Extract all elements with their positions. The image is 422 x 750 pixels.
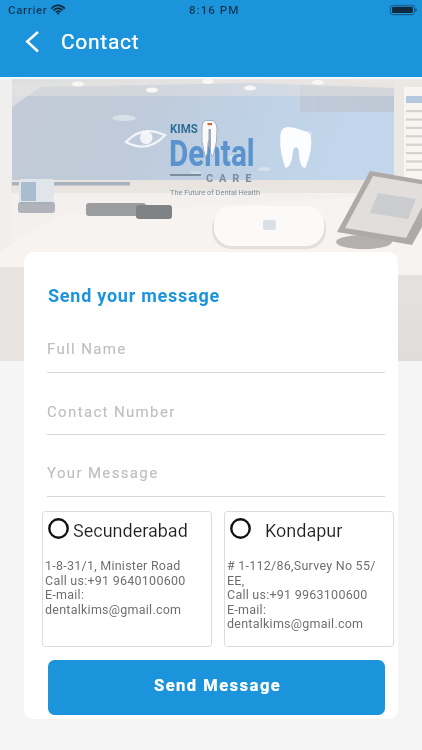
staticText: dentalkims@gmail.com [227, 616, 364, 631]
staticText: E-mail: [45, 587, 85, 602]
staticText: Kondapur [265, 520, 343, 541]
button[interactable] [42, 511, 212, 647]
staticText: Your Message [47, 464, 159, 482]
button[interactable]: Send Message [48, 660, 385, 715]
staticText: Call us:+91 9640100600 [45, 573, 186, 588]
button[interactable] [47, 392, 385, 428]
staticText: E-mail: [227, 602, 267, 617]
staticText: The Future of Dental Health [170, 188, 261, 197]
staticText: Full Name [47, 340, 127, 358]
button[interactable] [47, 453, 385, 489]
staticText: Carrier [8, 3, 48, 17]
staticText: EE, [227, 573, 245, 588]
staticText: Contact Number [47, 403, 176, 421]
staticText: C A R E [206, 172, 253, 185]
staticText: Call us:+91 9963100600 [227, 587, 368, 602]
staticText: Send your message [48, 285, 220, 306]
staticText: # 1-112/86,Survey No 55/ [227, 558, 376, 573]
staticText: Dental [169, 131, 255, 175]
staticText: 1-8-31/1, Minister Road [45, 558, 181, 573]
staticText: Send Message [154, 676, 282, 695]
staticText: Secunderabad [73, 520, 188, 541]
staticText: Contact [61, 30, 140, 55]
button[interactable] [47, 329, 385, 365]
button[interactable] [224, 511, 394, 647]
button[interactable]: Back [18, 26, 50, 56]
staticText: 8:16 PM [189, 3, 240, 17]
staticText: dentalkims@gmail.com [45, 602, 182, 617]
staticText: KIMS [170, 121, 198, 137]
